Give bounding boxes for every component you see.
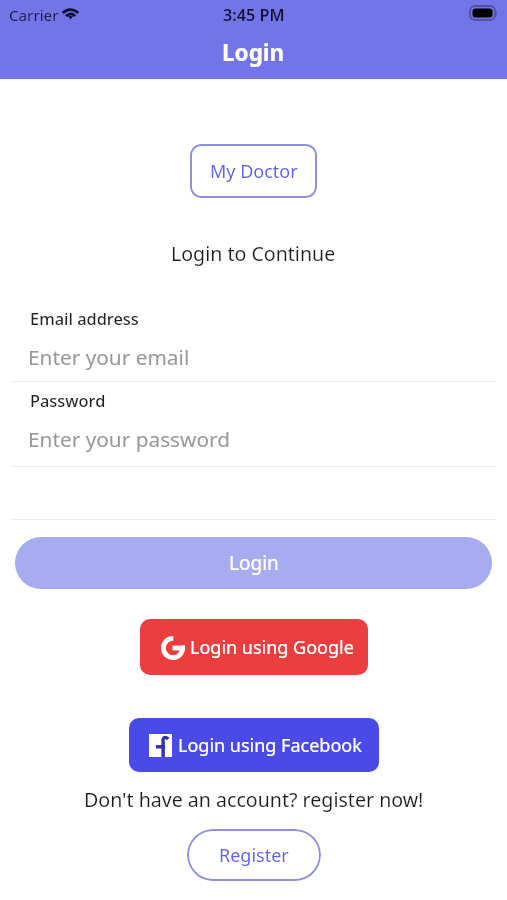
other: Battery full — [470, 6, 497, 20]
staticText: Login — [229, 550, 279, 576]
button[interactable]: Login using Facebook — [129, 718, 379, 772]
staticText: Password — [30, 389, 106, 411]
staticText: 3:45 PM — [223, 4, 285, 26]
staticText: Enter your email — [28, 343, 190, 371]
button[interactable]: Password — [14, 383, 495, 466]
staticText: My Doctor — [210, 159, 298, 184]
staticText: Login — [222, 37, 285, 68]
button[interactable]: Login using Google — [140, 619, 368, 675]
staticText: Enter your password — [28, 425, 230, 453]
staticText: Login using Google — [190, 635, 354, 660]
staticText: Don't have an account? register now! — [84, 786, 424, 813]
staticText: Email address — [30, 307, 139, 329]
button[interactable]: My Doctor — [190, 144, 317, 198]
staticText: Register — [219, 843, 289, 868]
button[interactable]: Email address — [14, 300, 495, 382]
staticText: Login using Facebook — [178, 733, 362, 758]
staticText: Login to Continue — [171, 240, 336, 267]
other: Wi-Fi signal — [60, 5, 81, 20]
button[interactable]: Register — [187, 829, 321, 881]
button[interactable]: Login — [15, 537, 492, 589]
staticText: Carrier — [9, 5, 59, 26]
